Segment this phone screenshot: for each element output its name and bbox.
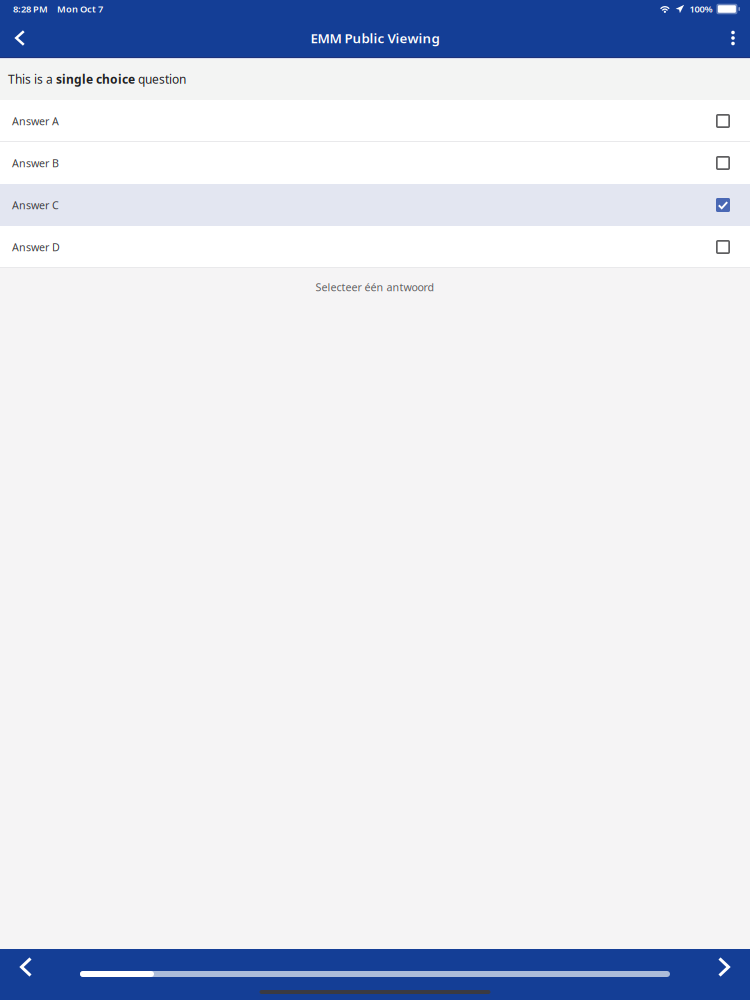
button[interactable]: Answer B — [0, 142, 750, 184]
staticText: question — [135, 71, 186, 87]
staticText: Selecteer één antwoord — [315, 280, 434, 294]
staticText: Answer C — [12, 198, 59, 212]
button[interactable]: Answer A — [0, 100, 750, 142]
staticText: Answer D — [12, 240, 60, 254]
button[interactable]: Back — [0, 18, 40, 58]
staticText: Mon Oct 7 — [57, 3, 103, 15]
button[interactable]: Answer C — [0, 184, 750, 226]
staticText: Answer B — [12, 156, 59, 170]
staticText: single choice — [56, 71, 135, 87]
staticText: This is a — [8, 71, 56, 87]
staticText: EMM Public Viewing — [310, 29, 439, 47]
button[interactable]: More options — [716, 18, 750, 58]
staticText: 8:28 PM — [13, 3, 48, 15]
staticText: Answer A — [12, 114, 59, 128]
button[interactable]: Answer D — [0, 226, 750, 268]
button[interactable]: Next question — [704, 949, 744, 999]
staticText: 100% — [689, 3, 712, 15]
button[interactable]: Previous question — [6, 949, 46, 999]
